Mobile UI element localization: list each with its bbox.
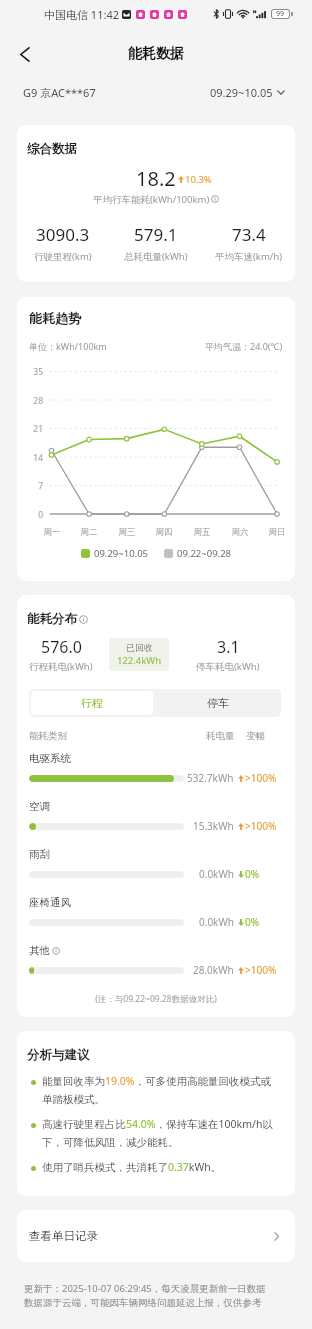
staticText: 532.7kWh bbox=[187, 771, 234, 785]
staticText: 周一 bbox=[40, 527, 64, 538]
staticText: 座椅通风 bbox=[29, 896, 71, 909]
staticText: 停车耗电(kWh) bbox=[196, 660, 260, 673]
staticText: 已回收 bbox=[126, 642, 153, 653]
staticText: 122.4kWh bbox=[117, 654, 162, 667]
button[interactable]: 查看单日记录 bbox=[17, 1210, 295, 1262]
staticText: 15.3kWh bbox=[193, 819, 234, 833]
staticText: 能量回收率为19.0%，可多使用高能量回收模式或单踏板模式。 bbox=[42, 1074, 281, 1106]
staticText: 停车 bbox=[207, 696, 229, 710]
staticText: 能耗趋势 bbox=[29, 310, 81, 326]
staticText: 电驱系统 bbox=[29, 752, 71, 765]
staticText: 耗电量 bbox=[206, 730, 235, 742]
button[interactable]: 行程 bbox=[31, 691, 153, 715]
staticText: 中国电信 11:42 bbox=[44, 7, 119, 22]
staticText: 综合数据 bbox=[27, 141, 77, 157]
staticText: 行程耗电(kWh) bbox=[29, 660, 93, 673]
staticText: 单位：kWh/100km bbox=[29, 340, 107, 352]
staticText: 28 bbox=[17, 395, 43, 407]
staticText: 周三 bbox=[115, 527, 139, 538]
staticText: 行程 bbox=[81, 696, 103, 710]
staticText: 变幅 bbox=[246, 730, 265, 742]
staticText: 28.0kWh bbox=[193, 963, 234, 977]
staticText: 3090.3 bbox=[36, 223, 90, 246]
staticText: 35 bbox=[17, 366, 43, 378]
staticText: 周四 bbox=[152, 527, 176, 538]
staticText: 0.0kWh bbox=[199, 867, 234, 881]
staticText: 雨刮 bbox=[29, 848, 50, 861]
staticText: 18.2 bbox=[136, 165, 176, 187]
staticText: >100% bbox=[245, 819, 277, 833]
staticText: 99 bbox=[276, 9, 285, 19]
staticText: 平均气温：24.0(℃) bbox=[205, 340, 283, 352]
staticText: (注：与09.22~09.28数据做对比) bbox=[17, 993, 295, 1005]
staticText: 73.4 bbox=[232, 223, 266, 246]
staticText: 查看单日记录 bbox=[29, 1229, 98, 1243]
staticText: 0.0kWh bbox=[199, 915, 234, 929]
staticText: 3.1 bbox=[217, 636, 240, 658]
staticText: 空调 bbox=[29, 800, 50, 813]
staticText: 分析与建议 bbox=[27, 1047, 90, 1063]
staticText: 576.0 bbox=[41, 636, 82, 658]
staticText: 更新于：2025-10-07 06:29:45，每天凌晨更新前一日数据 bbox=[24, 1282, 266, 1295]
staticText: >100% bbox=[245, 771, 277, 785]
staticText: 09.22~09.28 bbox=[177, 547, 231, 560]
button[interactable]: Back bbox=[7, 37, 41, 71]
staticText: 总耗电量(kWh) bbox=[124, 250, 188, 263]
button[interactable]: 09.29~10.05 bbox=[210, 85, 285, 100]
staticText: 行驶里程(km) bbox=[34, 250, 92, 263]
staticText: 能耗类别 bbox=[29, 730, 67, 742]
staticText: >100% bbox=[245, 963, 277, 977]
staticText: 14 bbox=[17, 452, 43, 464]
staticText: 579.1 bbox=[134, 223, 178, 246]
staticText: 数据源于云端，可能因车辆网络问题延迟上报，仅供参考 bbox=[24, 1297, 262, 1309]
staticText: 09.29~10.05 bbox=[210, 85, 273, 100]
staticText: 10.3% bbox=[185, 173, 212, 186]
staticText: 高速行驶里程占比54.0%，保持车速在100km/h以下，可降低风阻，减少能耗。 bbox=[42, 1117, 281, 1149]
staticText: 0% bbox=[245, 867, 260, 881]
staticText: 09.29~10.05 bbox=[94, 547, 148, 560]
staticText: 21 bbox=[17, 423, 43, 435]
staticText: 能耗数据 bbox=[128, 45, 184, 63]
staticText: 周五 bbox=[190, 527, 214, 538]
staticText: 周二 bbox=[77, 527, 101, 538]
staticText: 其他 bbox=[29, 944, 50, 957]
staticText: 周日 bbox=[265, 527, 289, 538]
staticText: 周六 bbox=[228, 527, 252, 538]
staticText: 使用了哨兵模式，共消耗了0.37kWh。 bbox=[42, 1160, 222, 1174]
staticText: 平均行车能耗(kWh/100km) bbox=[93, 193, 210, 205]
staticText: 0 bbox=[17, 509, 43, 521]
button[interactable]: 停车 bbox=[155, 689, 281, 717]
staticText: 平均车速(km/h) bbox=[215, 250, 283, 263]
staticText: G9 京AC***67 bbox=[23, 85, 96, 100]
staticText: 7 bbox=[17, 480, 43, 492]
staticText: 能耗分布 bbox=[27, 611, 77, 627]
staticText: 0% bbox=[245, 915, 260, 929]
